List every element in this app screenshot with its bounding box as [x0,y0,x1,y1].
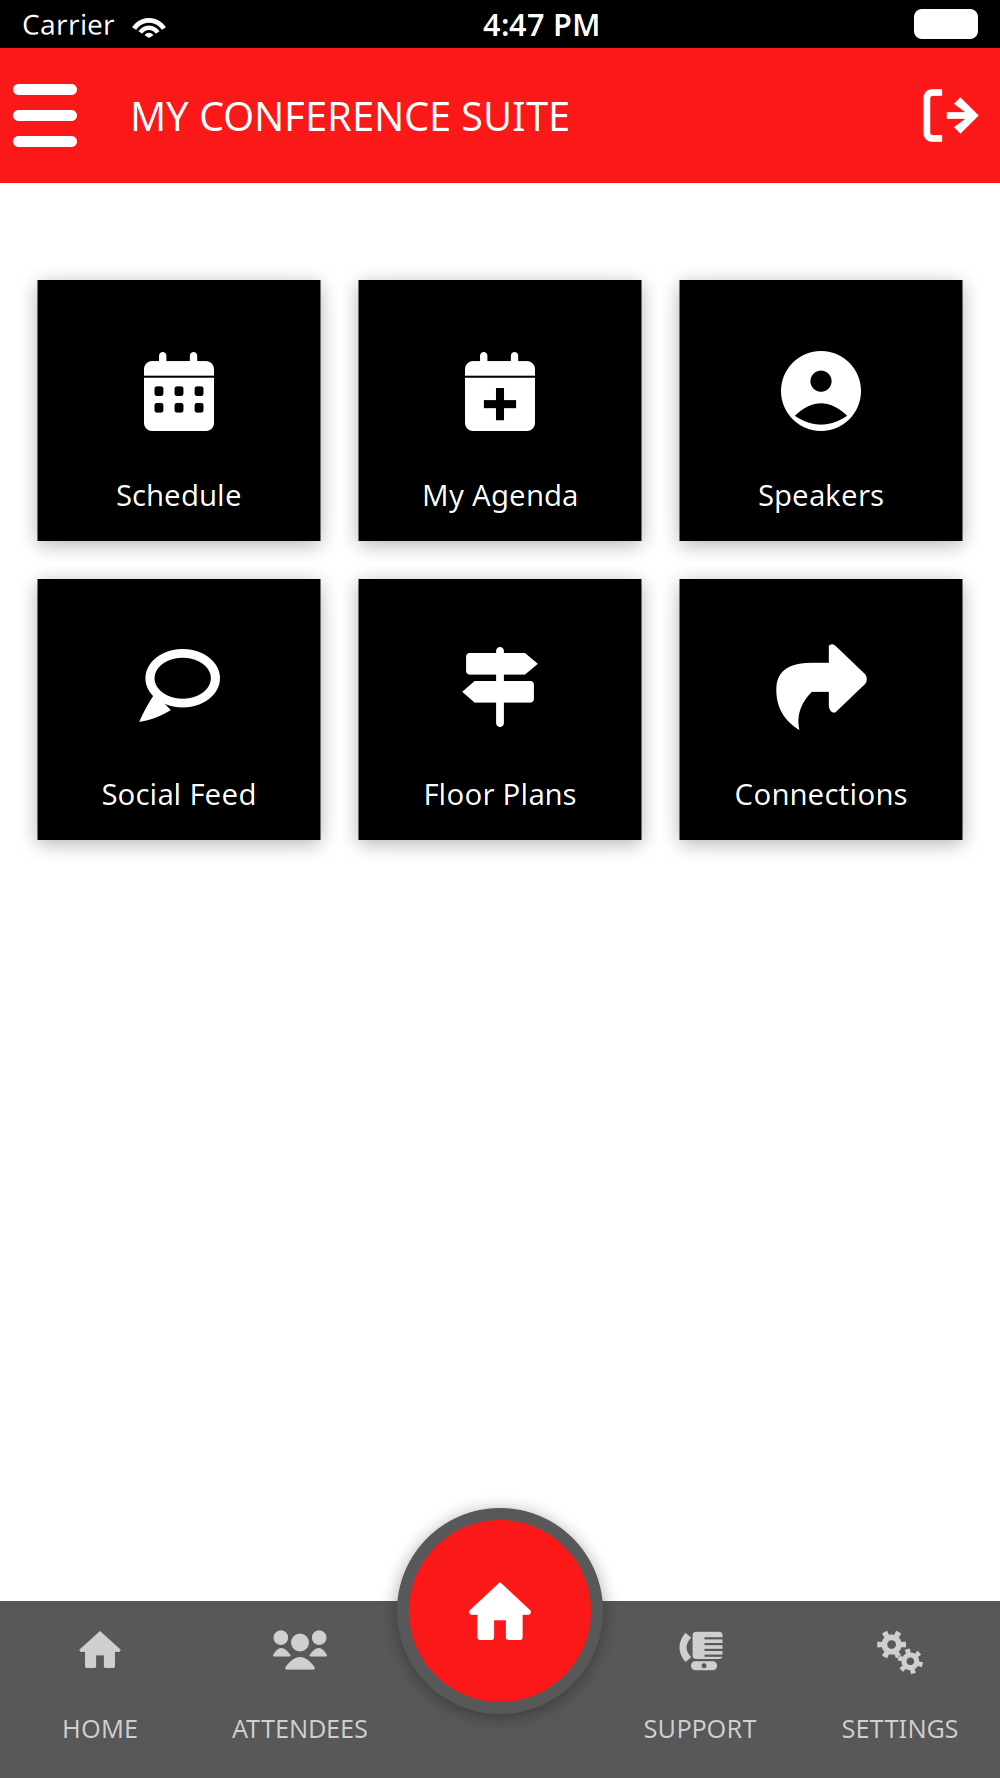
staticText: MY CONFERENCE SUITE [130,89,570,142]
staticText: HOME [62,1711,138,1745]
staticText: My Agenda [422,475,578,514]
button[interactable]: SUPPORT [600,1601,800,1778]
button[interactable]: Schedule [37,280,320,541]
staticText: Social Feed [101,774,256,813]
staticText: Floor Plans [423,774,576,813]
button[interactable]: Menu [0,48,90,183]
button[interactable]: ATTENDEES [200,1601,400,1778]
staticText: Speakers [758,475,884,514]
button[interactable]: Home [397,1508,603,1714]
button[interactable]: Connections [679,579,962,840]
staticText: Schedule [116,475,242,514]
button[interactable]: My Agenda [358,280,641,541]
button[interactable]: Social Feed [37,579,320,840]
staticText: SETTINGS [841,1711,958,1745]
staticText: SUPPORT [643,1711,756,1745]
button[interactable]: Speakers [679,280,962,541]
staticText: Carrier [22,5,115,43]
button[interactable]: Floor Plans [358,579,641,840]
staticText: Connections [734,774,907,813]
staticText: 4:47 PM [483,4,600,44]
button[interactable]: Log out [904,48,1000,183]
button[interactable]: HOME [0,1601,200,1778]
staticText: ATTENDEES [232,1711,368,1745]
button[interactable]: SETTINGS [800,1601,1000,1778]
